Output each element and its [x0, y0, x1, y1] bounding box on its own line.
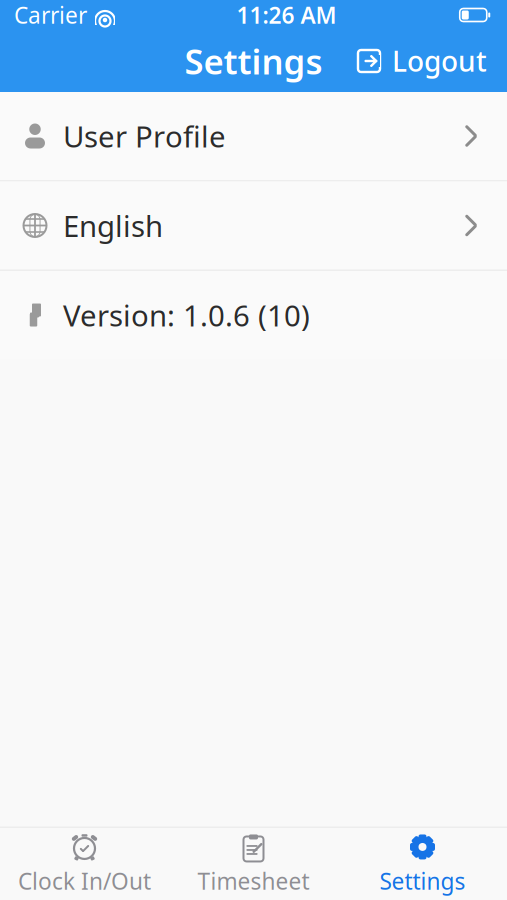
- staticText: Clock In/Out: [18, 866, 151, 896]
- button[interactable]: English: [0, 181, 507, 269]
- staticText: Settings: [184, 38, 322, 84]
- button[interactable]: Timesheet: [169, 828, 338, 900]
- staticText: 11:26 AM: [236, 0, 336, 30]
- staticText: Version: 1.0.6 (10): [63, 295, 310, 334]
- button[interactable]: Clock In/Out: [0, 828, 169, 900]
- staticText: Logout: [392, 42, 487, 80]
- staticText: English: [63, 206, 163, 245]
- button[interactable]: Logout: [344, 34, 499, 88]
- button[interactable]: User Profile: [0, 92, 507, 180]
- staticText: Carrier: [14, 0, 87, 30]
- staticText: User Profile: [63, 116, 226, 155]
- staticText: Settings: [379, 866, 465, 896]
- staticText: Timesheet: [197, 866, 309, 896]
- button[interactable]: Settings: [338, 828, 507, 900]
